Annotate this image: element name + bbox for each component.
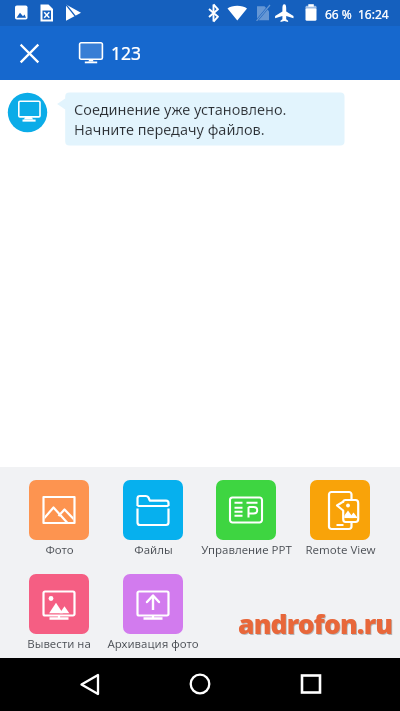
staticText: 123: [111, 41, 142, 65]
staticText: Соединение уже установлено.: [74, 99, 287, 119]
staticText: Фото: [45, 542, 74, 558]
staticText: androfon.ru: [238, 606, 393, 642]
button[interactable]: Back: [70, 662, 114, 706]
staticText: 16:24: [358, 6, 389, 22]
button[interactable]: Home: [178, 662, 222, 706]
button[interactable]: Remote View: [293, 480, 387, 558]
button[interactable]: Фото: [12, 480, 106, 558]
button[interactable]: Recent apps: [289, 662, 333, 706]
button[interactable]: Файлы: [106, 480, 200, 558]
button[interactable]: Вывести на: [12, 574, 106, 652]
button[interactable]: Управление PPT: [199, 480, 293, 558]
staticText: Начните передачу файлов.: [74, 119, 265, 139]
button[interactable]: 123: [79, 26, 142, 80]
button[interactable]: Архивация фото: [106, 574, 200, 652]
staticText: Remote View: [305, 542, 376, 558]
staticText: Файлы: [134, 542, 173, 558]
button[interactable]: Close: [9, 33, 49, 73]
staticText: Управление PPT: [201, 542, 292, 558]
staticText: Архивация фото: [107, 636, 199, 652]
staticText: 66 %: [325, 6, 352, 22]
staticText: androfon.ru: [239, 607, 394, 643]
staticText: Вывести на: [27, 636, 91, 652]
